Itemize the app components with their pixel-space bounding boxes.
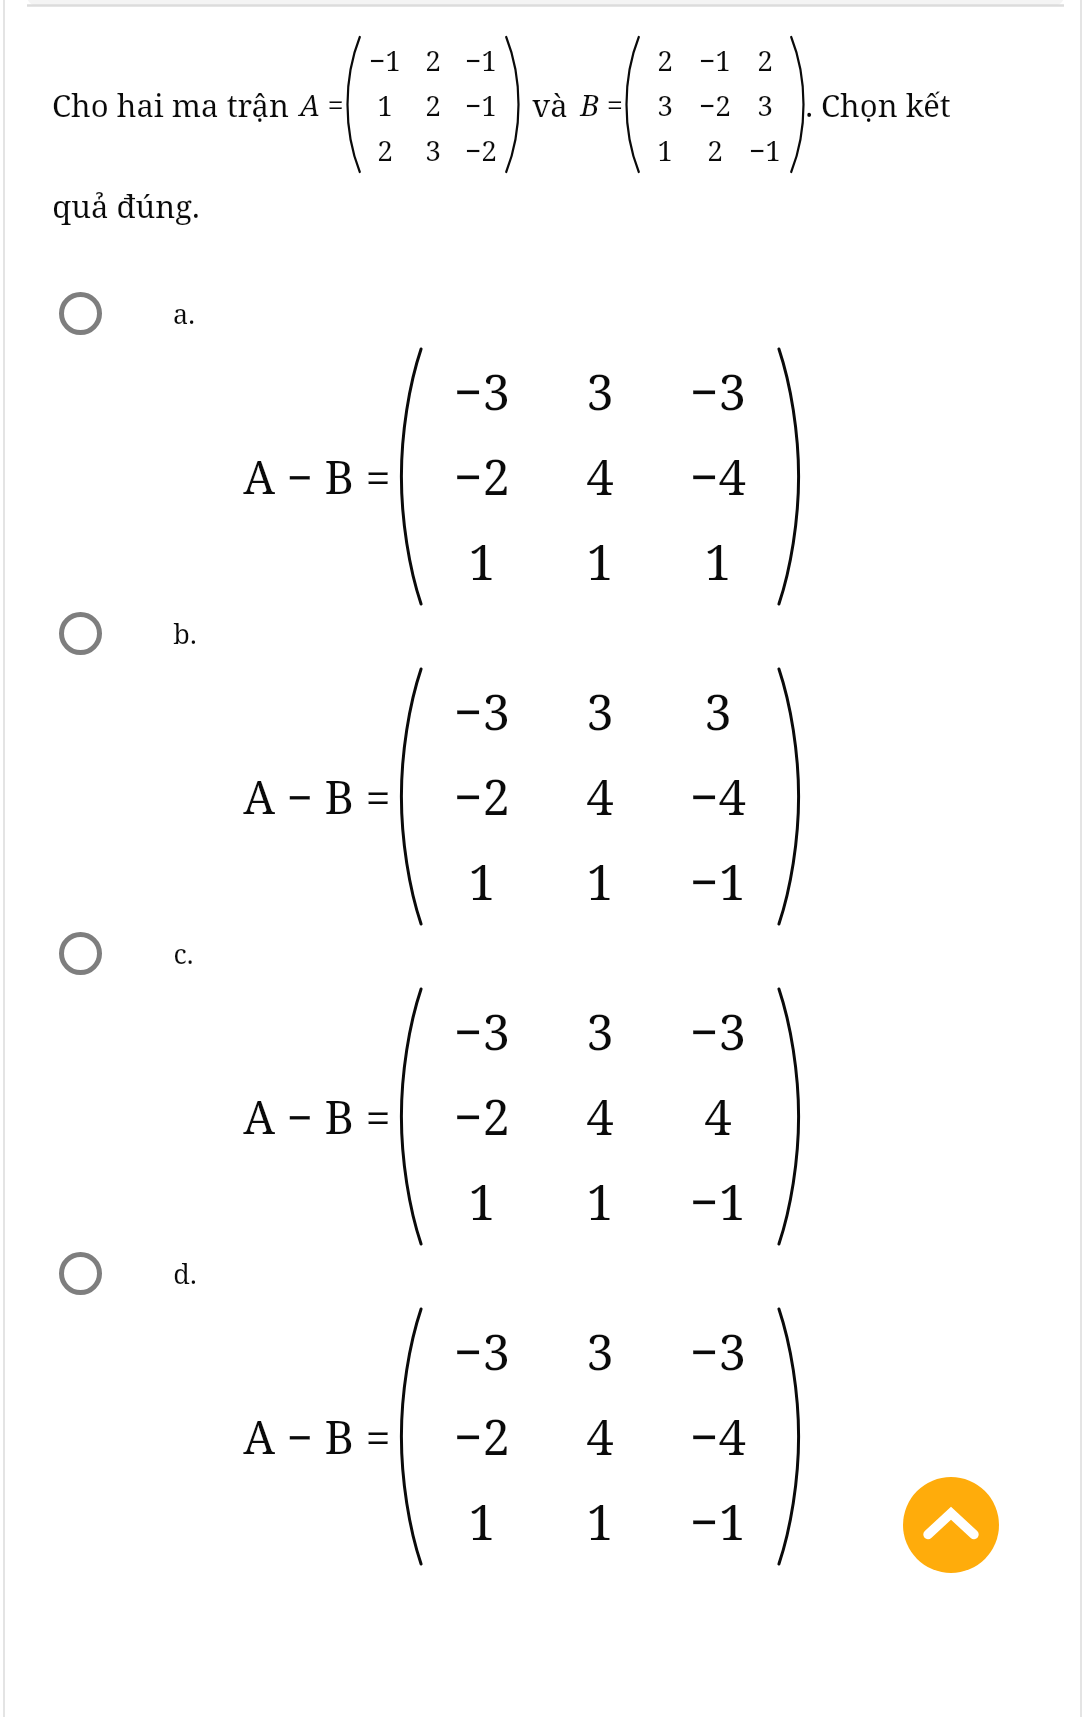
staticText: d. [173,1255,197,1292]
staticText: Cho hai ma trận [52,84,289,126]
staticText: −1 [690,848,746,915]
staticText: −1 [749,131,781,169]
staticText: −2 [699,86,731,124]
staticText: 1 [586,528,614,595]
staticText: 1 [586,1168,614,1235]
staticText: 1 [657,131,673,169]
staticText: 3 [757,86,773,124]
staticText: −1 [699,41,731,79]
staticText: 1 [468,1168,496,1235]
staticText: 2 [707,131,723,169]
staticText: quả đúng. [52,185,200,227]
staticText: −3 [690,1318,746,1385]
staticText: 4 [586,443,614,510]
staticText: 1 [377,86,393,124]
button[interactable]: b. [0,611,1090,923]
staticText: 3 [586,998,614,1065]
staticText: 1 [468,1488,496,1555]
staticText: 3 [657,86,673,124]
staticText: −2 [454,1403,510,1470]
staticText: −4 [690,1403,746,1470]
staticText: −1 [465,41,497,79]
staticText: −3 [454,678,510,745]
staticText: 2 [657,41,673,79]
staticText: 3 [586,358,614,425]
staticText: −4 [690,443,746,510]
staticText: −3 [454,1318,510,1385]
staticText: −3 [454,998,510,1065]
staticText: c. [173,935,194,972]
staticText: −2 [454,443,510,510]
staticText: −1 [369,41,401,79]
staticText: 1 [468,528,496,595]
button[interactable]: c. [0,931,1090,1243]
button[interactable]: d. [0,1251,1090,1563]
staticText: −1 [690,1488,746,1555]
staticText: −2 [465,131,497,169]
staticText: A − B = [243,766,391,827]
staticText: 4 [586,763,614,830]
button[interactable]: a. [0,291,1090,603]
staticText: A = [299,85,344,124]
staticText: −4 [690,763,746,830]
staticText: a. [173,295,195,332]
staticText: 4 [704,1083,732,1150]
staticText: 4 [586,1403,614,1470]
staticText: 3 [586,1318,614,1385]
staticText: 3 [704,678,732,745]
staticText: A − B = [243,1086,391,1147]
staticText: −3 [690,358,746,425]
staticText: b. [173,615,197,652]
staticText: 2 [425,41,441,79]
staticText: 3 [425,131,441,169]
staticText: A − B = [243,446,391,507]
staticText: 1 [586,1488,614,1555]
staticText: −1 [690,1168,746,1235]
staticText: 2 [757,41,773,79]
staticText: 2 [425,86,441,124]
staticText: 1 [468,848,496,915]
staticText: 3 [586,678,614,745]
staticText: và [532,84,568,126]
staticText: −3 [454,358,510,425]
staticText: 4 [586,1083,614,1150]
staticText: −2 [454,763,510,830]
staticText: B = [580,85,623,124]
button[interactable]: Scroll to top [903,1477,999,1573]
staticText: 2 [377,131,393,169]
staticText: −1 [465,86,497,124]
staticText: −2 [454,1083,510,1150]
staticText: 1 [704,528,732,595]
staticText: . Chọn kết [805,84,951,126]
staticText: −3 [690,998,746,1065]
staticText: 1 [586,848,614,915]
staticText: A − B = [243,1406,391,1467]
